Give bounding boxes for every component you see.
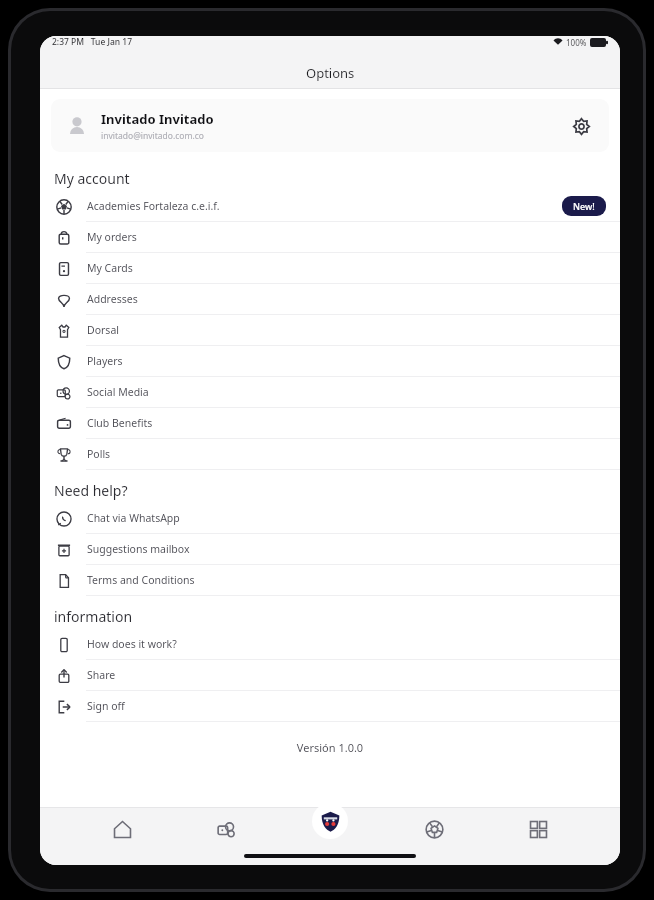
button[interactable]: Share bbox=[40, 660, 620, 691]
staticText: Polls bbox=[87, 447, 111, 461]
button[interactable]: My orders bbox=[40, 222, 620, 253]
button[interactable]: Academies Fortaleza c.e.i.f. bbox=[40, 191, 620, 222]
staticText: Share bbox=[87, 668, 116, 682]
button[interactable]: More bbox=[516, 807, 560, 851]
button[interactable]: Chat via WhatsApp bbox=[40, 503, 620, 534]
button[interactable]: Suggestions mailbox bbox=[40, 534, 620, 565]
staticText: 2:37 PM Tue Jan 17 bbox=[52, 36, 133, 48]
staticText: information bbox=[54, 607, 133, 626]
button[interactable]: Addresses bbox=[40, 284, 620, 315]
staticText: Club Benefits bbox=[87, 416, 153, 430]
staticText: Chat via WhatsApp bbox=[87, 511, 180, 525]
button[interactable]: Polls bbox=[40, 439, 620, 470]
button[interactable]: How does it work? bbox=[40, 629, 620, 660]
staticText: Dorsal bbox=[87, 323, 119, 337]
staticText: New! bbox=[573, 200, 595, 212]
staticText: Suggestions mailbox bbox=[87, 542, 190, 556]
button[interactable]: Social Media bbox=[40, 377, 620, 408]
button[interactable]: Social bbox=[204, 807, 248, 851]
button[interactable]: Settings bbox=[568, 113, 594, 139]
button[interactable]: Matches bbox=[412, 807, 456, 851]
staticText: My Cards bbox=[87, 261, 133, 275]
staticText: How does it work? bbox=[87, 637, 177, 651]
button[interactable]: Sign off bbox=[40, 691, 620, 722]
button[interactable]: Invitado Invitado bbox=[51, 99, 609, 152]
staticText: Addresses bbox=[87, 292, 138, 306]
button[interactable]: Dorsal bbox=[40, 315, 620, 346]
button[interactable]: Club bbox=[312, 803, 348, 839]
button[interactable]: Players bbox=[40, 346, 620, 377]
staticText: 100% bbox=[566, 37, 587, 48]
staticText: invitado@invitado.com.co bbox=[101, 130, 204, 142]
staticText: Need help? bbox=[54, 481, 128, 500]
staticText: Academies Fortaleza c.e.i.f. bbox=[87, 199, 220, 213]
staticText: Sign off bbox=[87, 699, 125, 713]
staticText: My orders bbox=[87, 230, 137, 244]
staticText: Versión 1.0.0 bbox=[40, 740, 620, 755]
button[interactable]: Terms and Conditions bbox=[40, 565, 620, 596]
button[interactable]: Home bbox=[100, 807, 144, 851]
button[interactable]: Club Benefits bbox=[40, 408, 620, 439]
staticText: Players bbox=[87, 354, 123, 368]
staticText: Social Media bbox=[87, 385, 149, 399]
staticText: My account bbox=[54, 169, 130, 188]
staticText: Terms and Conditions bbox=[87, 573, 195, 587]
button[interactable]: My Cards bbox=[40, 253, 620, 284]
staticText: Invitado Invitado bbox=[101, 110, 214, 128]
staticText: Options bbox=[306, 64, 355, 82]
